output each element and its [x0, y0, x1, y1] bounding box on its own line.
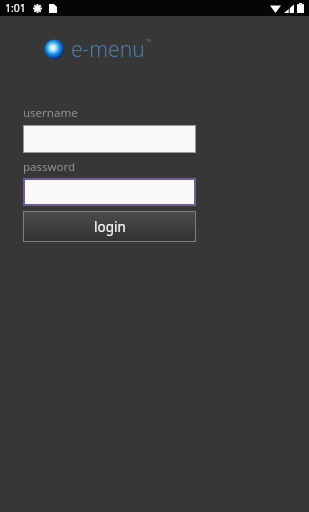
button[interactable]: login	[23, 211, 196, 242]
staticText: login	[94, 218, 126, 236]
staticText: ™	[146, 37, 152, 47]
button[interactable]: Username input field	[23, 125, 196, 153]
staticText: password	[23, 159, 76, 175]
staticText: username	[23, 105, 78, 121]
staticText: 1:01	[5, 1, 26, 15]
staticText: e-menu	[71, 35, 145, 64]
button[interactable]: Password input field	[23, 178, 196, 206]
